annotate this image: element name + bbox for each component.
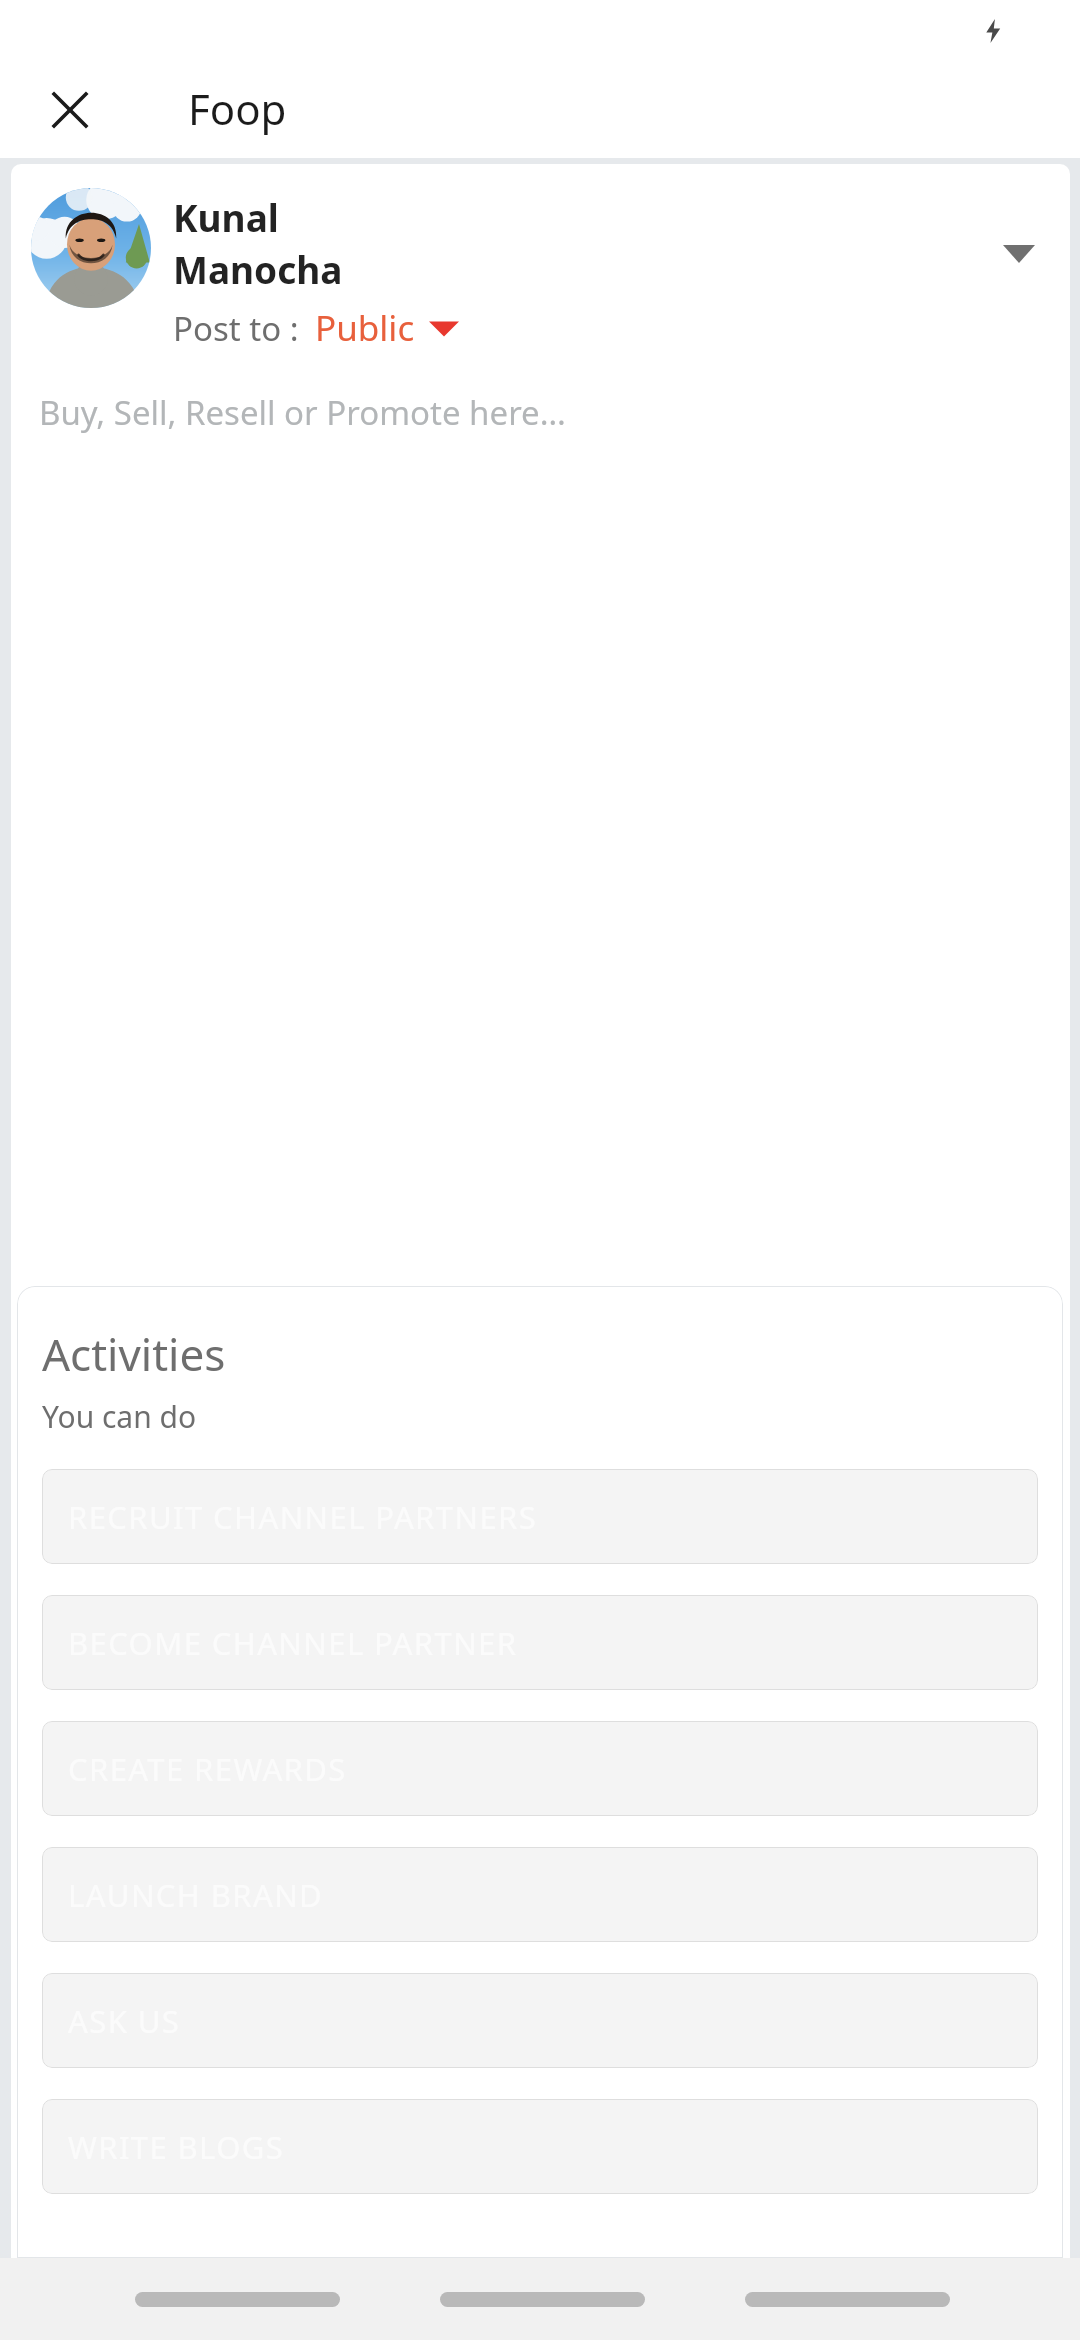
staticText: Buy, Sell, Resell or Promote here… — [39, 390, 566, 435]
button[interactable]: Close — [34, 74, 106, 146]
staticText: You can do — [42, 1396, 197, 1437]
button[interactable]: Buy, Sell, Resell or Promote here… — [11, 390, 1070, 2258]
button[interactable]: RECRUIT CHANNEL PARTNERS — [42, 1469, 1038, 1564]
button[interactable]: LAUNCH BRAND — [42, 1847, 1038, 1942]
button[interactable]: Profile photo — [31, 188, 151, 308]
button[interactable]: CREATE REWARDS — [42, 1721, 1038, 1816]
button[interactable]: WRITE BLOGS — [42, 2099, 1038, 2194]
staticText: Manocha — [173, 244, 343, 294]
button[interactable]: Post to : — [173, 304, 459, 352]
staticText: Kunal — [173, 192, 279, 242]
button[interactable]: Change audience — [988, 222, 1050, 284]
button[interactable]: Recents — [745, 2279, 950, 2319]
staticText: Activities — [42, 1324, 226, 1384]
staticText: Public — [315, 304, 415, 352]
button[interactable]: Back — [135, 2279, 340, 2319]
button[interactable]: BECOME CHANNEL PARTNER — [42, 1595, 1038, 1690]
staticText: Foop — [188, 80, 287, 137]
button[interactable]: ASK US — [42, 1973, 1038, 2068]
staticText: Post to : — [173, 306, 299, 351]
button[interactable]: Home — [440, 2279, 645, 2319]
